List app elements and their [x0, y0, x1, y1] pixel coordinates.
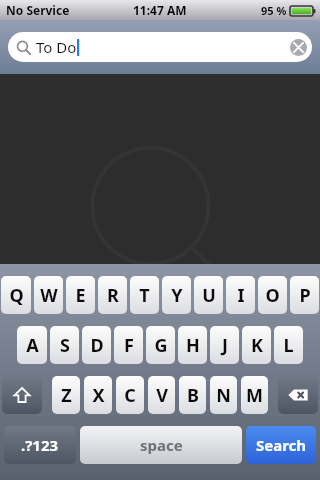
- staticText: M: [246, 383, 263, 408]
- staticText: .?123: [21, 435, 59, 455]
- button[interactable]: O: [258, 276, 287, 314]
- button[interactable]: S: [50, 326, 79, 364]
- staticText: H: [186, 333, 200, 358]
- button[interactable]: .?123: [4, 426, 76, 464]
- button[interactable]: Backspace: [278, 376, 318, 414]
- button[interactable]: To Do: [8, 32, 312, 62]
- button[interactable]: G: [146, 326, 175, 364]
- button[interactable]: Z: [52, 376, 80, 414]
- staticText: 95 %: [261, 3, 287, 18]
- staticText: E: [75, 283, 86, 308]
- button[interactable]: N: [210, 376, 237, 414]
- button[interactable]: B: [179, 376, 206, 414]
- staticText: T: [139, 283, 150, 308]
- staticText: S: [60, 333, 70, 358]
- staticText: A: [26, 333, 39, 358]
- staticText: X: [92, 383, 105, 408]
- button[interactable]: V: [148, 376, 175, 414]
- button[interactable]: Y: [162, 276, 191, 314]
- staticText: R: [107, 283, 119, 308]
- button[interactable]: P: [290, 276, 319, 314]
- staticText: I: [237, 283, 245, 308]
- staticText: L: [283, 333, 294, 358]
- button[interactable]: Shift: [2, 376, 42, 414]
- staticText: Z: [61, 383, 72, 408]
- button[interactable]: M: [241, 376, 268, 414]
- staticText: space: [140, 435, 183, 455]
- staticText: Y: [171, 283, 183, 308]
- button[interactable]: I: [226, 276, 255, 314]
- staticText: To Do: [36, 37, 77, 57]
- button[interactable]: T: [130, 276, 159, 314]
- staticText: 11:47 AM: [133, 2, 187, 18]
- button[interactable]: Search: [246, 426, 316, 464]
- staticText: Search: [256, 435, 307, 455]
- staticText: B: [187, 383, 199, 408]
- button[interactable]: X: [84, 376, 112, 414]
- staticText: No Service: [6, 2, 70, 18]
- staticText: G: [154, 333, 168, 358]
- staticText: P: [299, 283, 311, 308]
- staticText: K: [251, 333, 263, 358]
- button[interactable]: Clear text: [284, 33, 312, 61]
- staticText: O: [265, 283, 280, 308]
- button[interactable]: H: [178, 326, 207, 364]
- button[interactable]: A: [17, 326, 47, 364]
- button[interactable]: W: [34, 276, 63, 314]
- button[interactable]: R: [98, 276, 127, 314]
- staticText: U: [202, 283, 216, 308]
- staticText: N: [216, 383, 231, 408]
- staticText: D: [90, 333, 104, 358]
- button[interactable]: Q: [1, 276, 31, 314]
- staticText: F: [124, 333, 134, 358]
- staticText: J: [222, 333, 228, 358]
- button[interactable]: F: [114, 326, 143, 364]
- button[interactable]: C: [116, 376, 144, 414]
- button[interactable]: L: [274, 326, 303, 364]
- button[interactable]: D: [82, 326, 111, 364]
- button[interactable]: space: [80, 426, 242, 464]
- button[interactable]: E: [66, 276, 95, 314]
- staticText: Q: [9, 283, 24, 308]
- button[interactable]: K: [242, 326, 271, 364]
- staticText: C: [124, 383, 136, 408]
- button[interactable]: U: [194, 276, 223, 314]
- staticText: W: [40, 283, 58, 308]
- button[interactable]: J: [210, 326, 239, 364]
- staticText: V: [156, 383, 168, 408]
